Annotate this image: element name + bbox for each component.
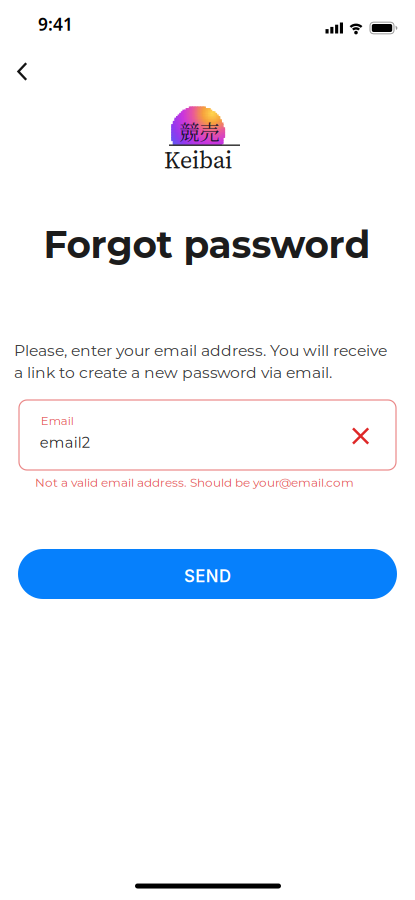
- button[interactable]: SEND: [18, 549, 397, 599]
- button[interactable]: [0, 51, 44, 92]
- staticText: email2: [40, 434, 90, 452]
- staticText: Keibai: [164, 144, 232, 176]
- button[interactable]: [341, 416, 381, 456]
- staticText: SEND: [184, 566, 231, 586]
- staticText: Not a valid email address. Should be you…: [35, 475, 354, 490]
- staticText: 競売: [179, 117, 219, 146]
- staticText: Forgot password: [43, 222, 370, 267]
- staticText: Email: [41, 414, 74, 428]
- staticText: Please, enter your email address. You wi…: [14, 341, 387, 382]
- staticText: 9:41: [38, 12, 73, 35]
